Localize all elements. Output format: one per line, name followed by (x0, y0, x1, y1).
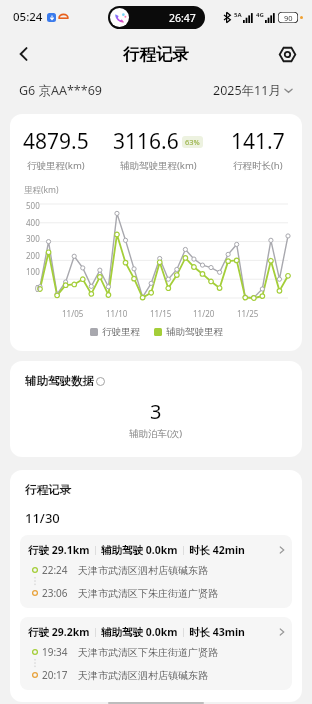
staticText: 400 (26, 217, 40, 228)
staticText: 22:24 (42, 563, 68, 577)
staticText: 辅助泊车(次) (129, 427, 183, 440)
button[interactable]: 行驶 29.2km (20, 617, 292, 690)
button[interactable]: G6 京AA***69 (19, 82, 102, 99)
staticText: 300 (26, 233, 40, 244)
staticText: 100 (26, 266, 40, 277)
staticText: 时长 43min (189, 625, 245, 639)
button[interactable]: Back (6, 36, 42, 72)
staticText: 行程记录 (25, 483, 71, 497)
staticText: 时长 42min (189, 543, 245, 557)
staticText: 3 (150, 398, 162, 425)
button[interactable]: 辅助驾驶数据 (25, 374, 105, 388)
staticText: 辅助驾驶里程 (166, 326, 223, 338)
staticText: 天津市武清区泗村店镇碱东路 (78, 669, 208, 682)
staticText: 5A (234, 11, 242, 19)
staticText: 辅助驾驶 0.0km (101, 543, 178, 557)
staticText: 11/15 (150, 308, 172, 319)
staticText: 4879.5 (23, 127, 89, 156)
staticText: 行驶里程(km) (27, 159, 85, 172)
staticText: 11/05 (62, 308, 84, 319)
staticText: 行程记录 (123, 44, 189, 65)
staticText: 行程时长(h) (233, 159, 283, 172)
button[interactable]: Settings (270, 37, 304, 71)
staticText: 11/25 (237, 308, 259, 319)
staticText: 行驶 29.1km (28, 543, 90, 557)
staticText: 3116.6 (113, 127, 179, 156)
staticText: 200 (26, 250, 40, 261)
staticText: 11/20 (193, 308, 215, 319)
staticText: 辅助驾驶数据 (25, 374, 94, 388)
staticText: 辅助驾驶里程(km) (120, 159, 197, 172)
staticText: 天津市武清区下朱庄街道广贤路 (78, 587, 218, 600)
staticText: 141.7 (231, 127, 285, 156)
staticText: 19:34 (42, 645, 68, 659)
staticText: 天津市武清区泗村店镇碱东路 (78, 564, 208, 577)
staticText: 0 (35, 283, 40, 294)
staticText: 23:06 (42, 586, 68, 600)
staticText: 500 (26, 200, 40, 211)
staticText: 26:47 (169, 11, 196, 25)
button[interactable]: 行驶 29.1km (20, 535, 292, 608)
staticText: 天津市武清区下朱庄街道广贤路 (78, 646, 218, 659)
staticText: 20:17 (42, 668, 68, 682)
staticText: 辅助驾驶 0.0km (101, 625, 178, 639)
staticText: 行驶 29.2km (28, 625, 90, 639)
staticText: 63% (185, 137, 200, 147)
staticText: 行驶里程 (102, 326, 140, 338)
staticText: 2025年11月 (213, 82, 281, 99)
staticText: 4G (256, 11, 264, 19)
staticText: 05:24 (13, 9, 43, 25)
staticText: 11/30 (25, 509, 60, 527)
staticText: 11/10 (106, 308, 128, 319)
button[interactable]: 2025年11月 (213, 82, 293, 99)
staticText: 90 (284, 13, 293, 23)
staticText: 里程(km) (24, 184, 59, 196)
